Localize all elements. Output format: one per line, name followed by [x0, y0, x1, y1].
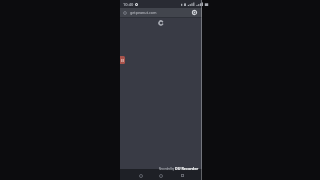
button[interactable]: Back [135, 170, 146, 180]
button[interactable]: Recent apps [177, 170, 188, 180]
staticText: 10:40 [123, 2, 134, 7]
button[interactable]: Screen recorder [120, 56, 125, 64]
other: Loading [159, 21, 163, 25]
staticText: DU Recorder [175, 166, 199, 171]
button[interactable]: Home [155, 170, 166, 180]
button[interactable]: Site information [123, 11, 127, 15]
staticText: getpeanut.com [130, 10, 157, 15]
button[interactable]: Account [192, 10, 197, 15]
staticText: Recorded by [159, 167, 175, 171]
